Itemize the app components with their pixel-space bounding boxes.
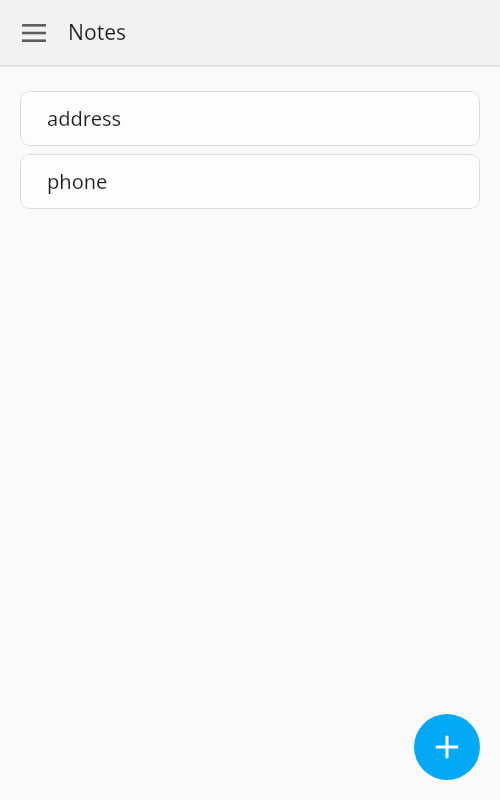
staticText: Notes	[68, 18, 127, 47]
button[interactable]: address	[20, 91, 480, 146]
staticText: address	[47, 105, 122, 132]
button[interactable]: phone	[20, 154, 480, 209]
button[interactable]: Open navigation drawer	[10, 9, 58, 57]
button[interactable]: Add note	[414, 714, 480, 780]
staticText: phone	[47, 168, 108, 195]
